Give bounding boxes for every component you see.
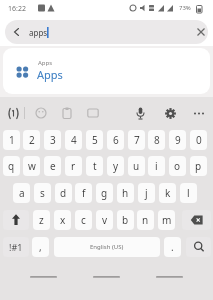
- staticText: 3: [50, 133, 56, 147]
- button[interactable]: y: [107, 156, 124, 176]
- button[interactable]: !#1: [3, 237, 29, 257]
- button[interactable]: s: [34, 183, 51, 203]
- staticText: 5: [92, 133, 98, 147]
- staticText: c: [81, 213, 86, 227]
- staticText: 2: [29, 133, 35, 147]
- button[interactable]: [4, 104, 23, 122]
- button[interactable]: o: [169, 156, 186, 176]
- staticText: 4: [71, 133, 77, 147]
- staticText: g: [101, 186, 108, 200]
- button[interactable]: x: [54, 210, 71, 230]
- button[interactable]: i: [148, 156, 165, 176]
- button[interactable]: a: [13, 183, 30, 203]
- button[interactable]: 0: [190, 130, 207, 150]
- button[interactable]: Apps: [3, 48, 210, 94]
- staticText: z: [39, 213, 44, 227]
- staticText: m: [162, 213, 172, 227]
- button[interactable]: g: [96, 183, 113, 203]
- button[interactable]: t: [86, 156, 103, 176]
- staticText: a: [19, 186, 25, 200]
- staticText: r: [71, 159, 76, 173]
- staticText: English (US): [90, 243, 124, 251]
- staticText: p: [195, 159, 202, 173]
- button[interactable]: k: [159, 183, 176, 203]
- button[interactable]: b: [117, 210, 134, 230]
- staticText: b: [122, 213, 129, 227]
- staticText: o: [174, 159, 181, 173]
- button[interactable]: h: [117, 183, 134, 203]
- staticText: Apps: [38, 59, 53, 67]
- staticText: 16:22: [8, 4, 26, 14]
- button[interactable]: [186, 237, 211, 257]
- staticText: f: [82, 186, 86, 200]
- button[interactable]: [190, 104, 207, 122]
- staticText: .: [171, 240, 174, 254]
- staticText: j: [145, 186, 148, 200]
- button[interactable]: c: [75, 210, 92, 230]
- staticText: 1: [9, 133, 15, 147]
- button[interactable]: [32, 104, 49, 122]
- button[interactable]: v: [96, 210, 113, 230]
- staticText: l: [187, 186, 190, 200]
- staticText: Apps: [37, 67, 63, 82]
- staticText: h: [122, 186, 129, 200]
- staticText: 73%: [179, 4, 191, 12]
- button[interactable]: f: [75, 183, 92, 203]
- button[interactable]: 5: [86, 130, 103, 150]
- button[interactable]: 4: [65, 130, 82, 150]
- button[interactable]: [131, 104, 149, 122]
- button[interactable]: w: [23, 156, 40, 176]
- staticText: i: [155, 159, 158, 173]
- staticText: apps: [29, 27, 48, 38]
- button[interactable]: u: [128, 156, 145, 176]
- staticText: w: [28, 159, 36, 173]
- button[interactable]: z: [33, 210, 50, 230]
- button[interactable]: 8: [148, 130, 165, 150]
- staticText: 0: [196, 133, 202, 147]
- button[interactable]: [58, 104, 75, 122]
- staticText: q: [8, 159, 15, 173]
- staticText: v: [102, 213, 108, 227]
- button[interactable]: ,: [32, 237, 49, 257]
- button[interactable]: [84, 104, 101, 122]
- button[interactable]: 1: [3, 130, 20, 150]
- staticText: 9: [175, 133, 181, 147]
- button[interactable]: 7: [128, 130, 145, 150]
- staticText: 7: [134, 133, 140, 147]
- staticText: 6: [113, 133, 119, 147]
- button[interactable]: [3, 210, 29, 230]
- button[interactable]: n: [137, 210, 154, 230]
- button[interactable]: p: [190, 156, 207, 176]
- staticText: t: [93, 159, 97, 173]
- button[interactable]: 3: [44, 130, 61, 150]
- staticText: s: [40, 186, 45, 200]
- staticText: ,: [39, 240, 42, 254]
- button[interactable]: 6: [107, 130, 124, 150]
- staticText: d: [60, 186, 67, 200]
- staticText: k: [165, 186, 171, 200]
- staticText: y: [113, 159, 119, 173]
- staticText: !#1: [9, 241, 23, 253]
- staticText: n: [142, 213, 149, 227]
- staticText: u: [133, 159, 140, 173]
- button[interactable]: apps: [5, 20, 208, 44]
- button[interactable]: 2: [23, 130, 40, 150]
- button[interactable]: q: [3, 156, 20, 176]
- staticText: 8: [154, 133, 160, 147]
- button[interactable]: [161, 104, 179, 122]
- button[interactable]: e: [44, 156, 61, 176]
- button[interactable]: .: [164, 237, 181, 257]
- button[interactable]: m: [158, 210, 175, 230]
- button[interactable]: [182, 210, 211, 230]
- button[interactable]: l: [180, 183, 197, 203]
- button[interactable]: d: [55, 183, 72, 203]
- button[interactable]: English (US): [54, 237, 160, 257]
- staticText: e: [50, 159, 56, 173]
- staticText: x: [60, 213, 66, 227]
- button[interactable]: j: [138, 183, 155, 203]
- button[interactable]: 9: [169, 130, 186, 150]
- button[interactable]: r: [65, 156, 82, 176]
